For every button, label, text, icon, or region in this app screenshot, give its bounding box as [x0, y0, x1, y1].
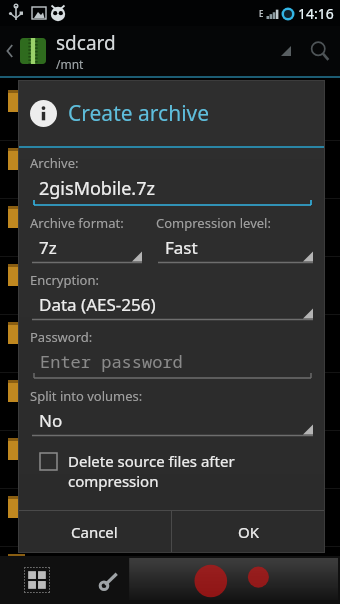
button[interactable]: Delete source files after	[28, 449, 315, 493]
staticText: 7z	[39, 236, 57, 259]
staticText: Archive format:	[30, 214, 124, 232]
staticText: Split into volumes:	[30, 387, 143, 405]
button[interactable]: Cancel	[18, 511, 171, 553]
button[interactable]: OK	[172, 511, 325, 553]
staticText: No	[39, 409, 63, 432]
button[interactable]: 2gisMobile.7z	[28, 173, 315, 207]
button[interactable]: 7z	[28, 233, 144, 264]
staticText: 14:16	[298, 4, 334, 23]
staticText: OK	[238, 522, 260, 542]
staticText: Data (AES-256)	[39, 293, 156, 316]
staticText: Password:	[30, 328, 93, 346]
staticText: /mnt	[56, 56, 84, 72]
staticText: 2gisMobile.7z	[39, 176, 155, 201]
button[interactable]: Data (AES-256)	[28, 290, 315, 321]
button[interactable]: No	[28, 406, 315, 437]
staticText: Compression level:	[156, 214, 271, 232]
button[interactable]: More options	[272, 26, 300, 76]
button[interactable]: Search	[300, 26, 340, 76]
staticText: Archive:	[30, 154, 79, 172]
staticText: sdcard	[56, 30, 116, 56]
button[interactable]: Tools	[74, 556, 146, 604]
staticText: E	[259, 8, 264, 19]
button[interactable]: Enter password	[28, 347, 315, 380]
staticText: Delete source files after	[68, 451, 235, 471]
button[interactable]: Fast	[154, 233, 315, 264]
staticText: Enter password	[40, 350, 183, 373]
button[interactable]: Up	[0, 26, 20, 76]
staticText: Create archive	[68, 99, 210, 128]
staticText: Fast	[165, 236, 198, 259]
staticText: Cancel	[71, 522, 118, 542]
staticText: compression	[68, 471, 159, 491]
staticText: Encryption:	[30, 271, 99, 289]
button[interactable]: Apps	[0, 556, 74, 604]
